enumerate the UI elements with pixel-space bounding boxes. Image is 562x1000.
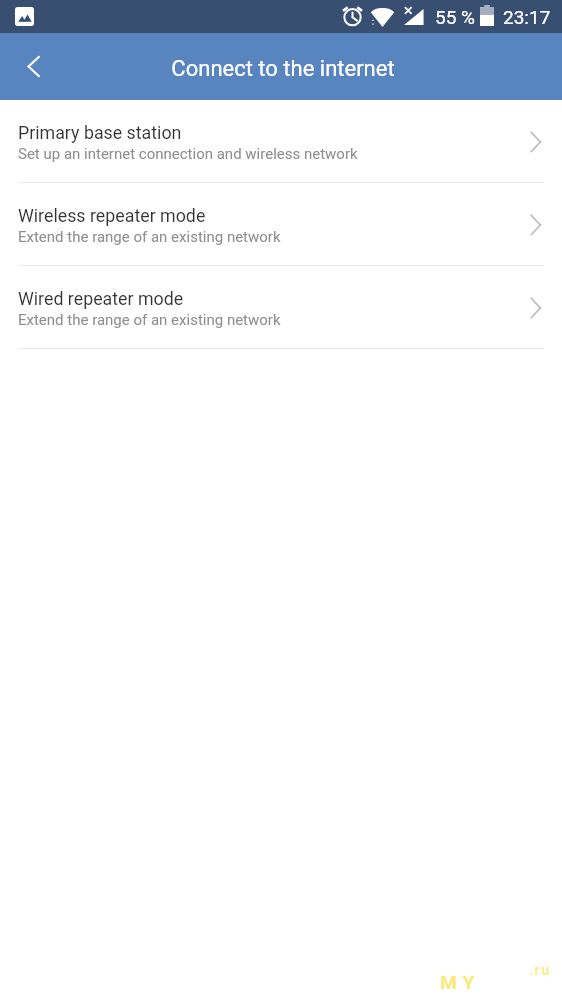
button[interactable]: Back [0,33,66,100]
staticText: MY [440,971,481,993]
staticText: Extend the range of an existing network [18,311,281,329]
staticText: 55 % [435,6,475,28]
staticText: 23:17 [503,6,551,28]
staticText: Set up an internet connection and wirele… [18,145,358,163]
button[interactable]: Wired repeater mode [0,266,562,349]
staticText: Wireless repeater mode [18,205,206,226]
button[interactable]: Primary base station [0,100,562,183]
staticText: Primary base station [18,122,182,143]
button[interactable]: Wireless repeater mode [0,183,562,266]
staticText: Extend the range of an existing network [18,228,281,246]
staticText: .ru [529,962,551,978]
staticText: Connect to the internet [171,56,395,82]
staticText: Wired repeater mode [18,288,184,309]
